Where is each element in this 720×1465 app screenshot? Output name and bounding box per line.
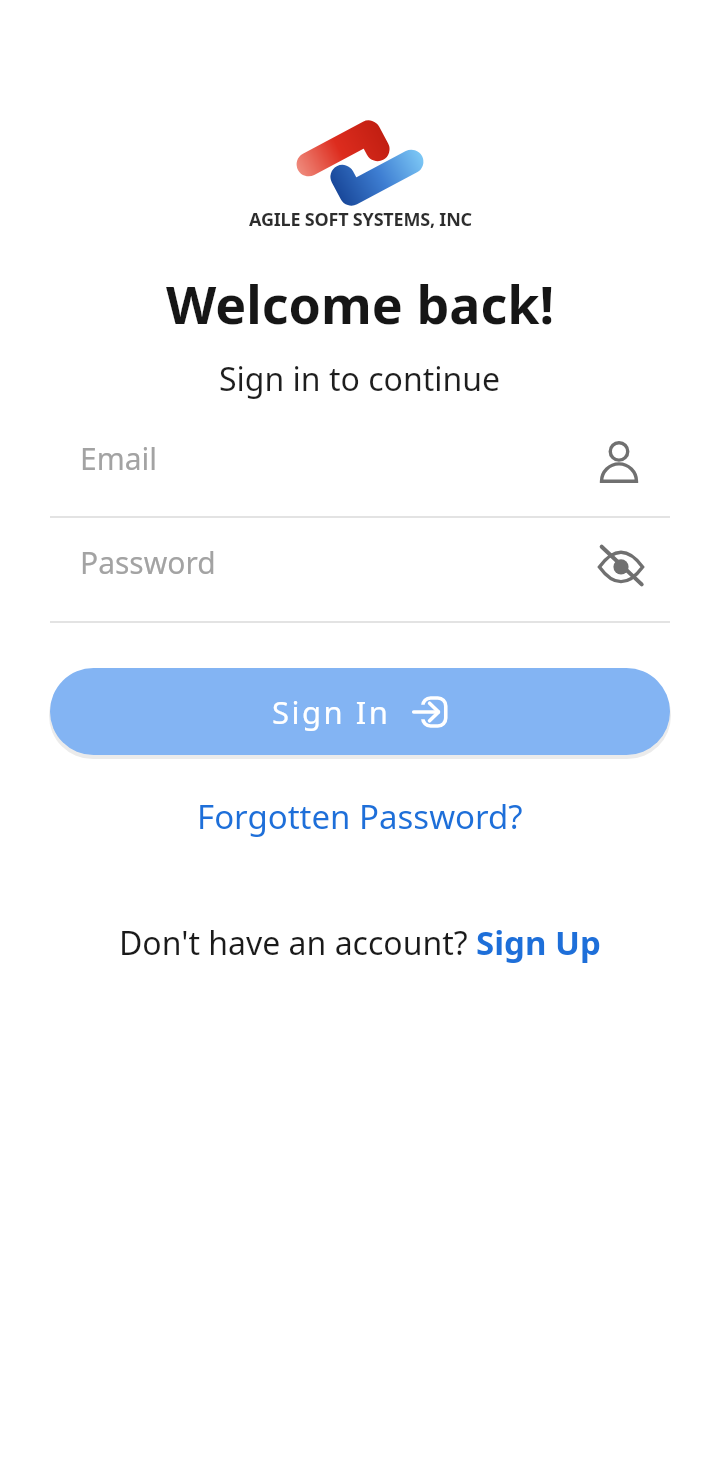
staticText: Sign in to continue	[219, 357, 501, 401]
staticText: Don't have an account?	[119, 921, 476, 965]
button[interactable]: Password	[50, 538, 670, 586]
staticText: AGILE SOFT SYSTEMS, INC	[249, 207, 472, 232]
staticText: Password	[80, 542, 216, 583]
button[interactable]: Email	[50, 434, 670, 482]
staticText: Welcome back!	[166, 268, 555, 339]
button[interactable]: Sign In	[50, 668, 670, 755]
staticText: Forgotten Password?	[197, 794, 523, 839]
staticText: Sign Up	[476, 920, 601, 965]
staticText: Email	[80, 438, 158, 479]
button[interactable]: Sign Up	[476, 920, 601, 965]
staticText: Sign In	[272, 691, 391, 733]
button[interactable]: Forgotten Password?	[197, 794, 523, 839]
